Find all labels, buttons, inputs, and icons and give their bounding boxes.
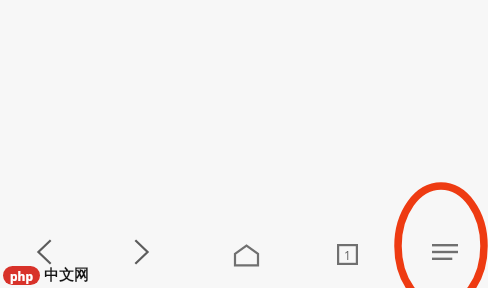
button[interactable]: Home	[224, 233, 268, 277]
button[interactable]: Back	[22, 230, 66, 274]
button[interactable]: Tabs	[325, 232, 369, 276]
button[interactable]: Menu	[423, 230, 467, 274]
staticText: 中文网	[44, 266, 89, 285]
staticText: php	[10, 268, 33, 284]
button[interactable]: Forward	[120, 230, 164, 274]
staticText: 1	[344, 247, 351, 263]
